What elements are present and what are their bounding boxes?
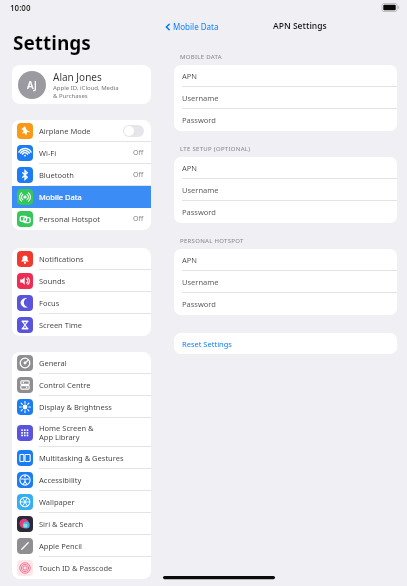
button[interactable]: Notifications xyxy=(12,248,151,270)
button[interactable]: Password xyxy=(174,293,397,315)
staticText: Personal Hotspot xyxy=(39,214,133,224)
button[interactable]: Airplane Mode toggle xyxy=(123,125,144,137)
button[interactable]: Bluetooth xyxy=(12,164,151,186)
button[interactable]: Control Centre xyxy=(12,374,151,396)
staticText: General xyxy=(39,358,144,368)
button[interactable]: Apple Pencil xyxy=(12,535,151,557)
button[interactable]: General xyxy=(12,352,151,374)
button[interactable]: Touch ID & Passcode xyxy=(12,557,151,579)
button[interactable]: Screen Time xyxy=(12,314,151,336)
staticText: Wallpaper xyxy=(39,497,144,507)
button[interactable]: Password xyxy=(174,109,397,131)
button[interactable]: Accessibility xyxy=(12,469,151,491)
staticText: APN xyxy=(182,255,198,265)
button[interactable]: Username xyxy=(174,271,397,293)
staticText: Airplane Mode xyxy=(39,126,123,136)
button[interactable]: Username xyxy=(174,87,397,109)
staticText: Screen Time xyxy=(39,320,144,330)
staticText: Password xyxy=(182,207,216,217)
staticText: MOBILE DATA xyxy=(180,53,222,61)
staticText: Notifications xyxy=(39,254,144,264)
button[interactable]: Reset Settings xyxy=(174,333,397,354)
staticText: Username xyxy=(182,185,219,195)
button[interactable]: Multitasking & Gestures xyxy=(12,447,151,469)
staticText: Reset Settings xyxy=(182,339,232,349)
button[interactable]: APN xyxy=(174,249,397,271)
staticText: Username xyxy=(182,93,219,103)
button[interactable]: Personal Hotspot xyxy=(12,208,151,230)
staticText: Apple Pencil xyxy=(39,541,144,551)
staticText: Multitasking & Gestures xyxy=(39,453,144,463)
button[interactable]: Mobile Data xyxy=(163,21,219,32)
staticText: Alan Jones xyxy=(53,70,102,84)
staticText: Focus xyxy=(39,298,144,308)
staticText: Accessibility xyxy=(39,475,144,485)
staticText: 10:00 xyxy=(10,2,31,13)
staticText: APN Settings xyxy=(273,20,327,32)
staticText: Password xyxy=(182,299,216,309)
button[interactable]: APN xyxy=(174,157,397,179)
staticText: Sounds xyxy=(39,276,144,286)
staticText: Off xyxy=(133,214,144,224)
button[interactable]: Wi-Fi xyxy=(12,142,151,164)
button[interactable]: Password xyxy=(174,201,397,223)
staticText: Control Centre xyxy=(39,380,144,390)
button[interactable]: Focus xyxy=(12,292,151,314)
button[interactable]: Username xyxy=(174,179,397,201)
staticText: Mobile Data xyxy=(173,21,219,32)
staticText: Off xyxy=(133,148,144,158)
staticText: Apple ID, iCloud, Media & Purchases xyxy=(53,84,119,100)
staticText: Settings xyxy=(13,30,91,56)
staticText: Mobile Data xyxy=(39,192,144,202)
button[interactable]: Home Screen & App Library xyxy=(12,418,151,447)
staticText: Home Screen & App Library xyxy=(39,423,144,442)
staticText: Wi-Fi xyxy=(39,148,133,158)
staticText: PERSONAL HOTSPOT xyxy=(180,237,244,245)
button[interactable]: Display & Brightness xyxy=(12,396,151,418)
button[interactable]: Wallpaper xyxy=(12,491,151,513)
button[interactable]: AJ xyxy=(12,65,151,104)
button[interactable]: APN xyxy=(174,65,397,87)
staticText: AJ xyxy=(27,78,37,92)
staticText: Password xyxy=(182,115,216,125)
staticText: APN xyxy=(182,71,198,81)
staticText: Username xyxy=(182,277,219,287)
staticText: Bluetooth xyxy=(39,170,133,180)
staticText: Display & Brightness xyxy=(39,402,144,412)
button[interactable]: Siri & Search xyxy=(12,513,151,535)
staticText: Touch ID & Passcode xyxy=(39,563,144,573)
button[interactable]: Sounds xyxy=(12,270,151,292)
staticText: APN xyxy=(182,163,198,173)
button[interactable]: Airplane Mode xyxy=(12,120,151,142)
staticText: LTE SETUP (OPTIONAL) xyxy=(180,145,251,153)
staticText: Siri & Search xyxy=(39,519,144,529)
button[interactable]: Mobile Data xyxy=(12,186,151,208)
staticText: Off xyxy=(133,170,144,180)
